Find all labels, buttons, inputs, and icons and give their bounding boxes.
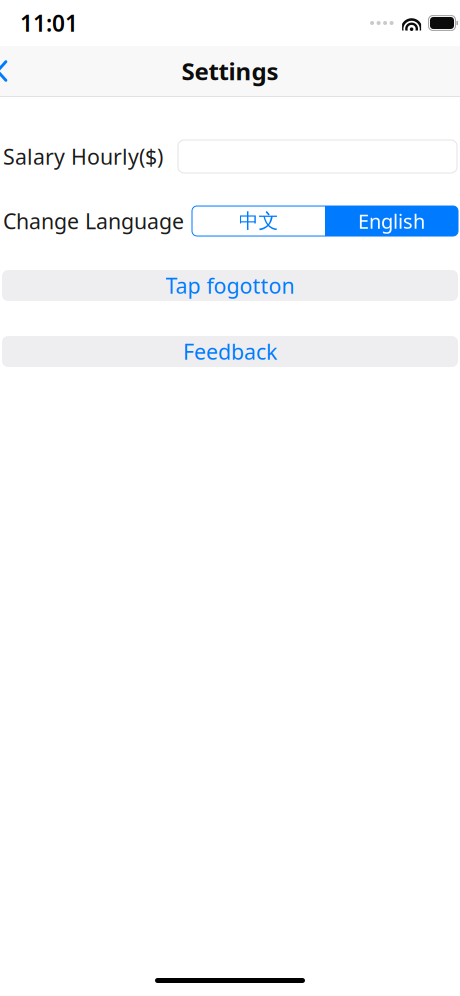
staticText: 中文: [238, 209, 278, 233]
button[interactable]: 中文: [192, 206, 325, 236]
staticText: Tap fogotton: [165, 271, 294, 300]
button[interactable]: Feedback: [2, 336, 458, 367]
staticText: Salary Hourly($): [3, 142, 163, 171]
staticText: 11:01: [20, 8, 78, 38]
staticText: Change Language: [3, 207, 184, 235]
staticText: English: [358, 208, 425, 234]
staticText: Feedback: [183, 337, 277, 366]
button[interactable]: Tap fogotton: [2, 270, 458, 301]
button[interactable]: English: [325, 206, 458, 236]
staticText: Settings: [181, 55, 278, 87]
button[interactable]: Back: [0, 49, 24, 93]
